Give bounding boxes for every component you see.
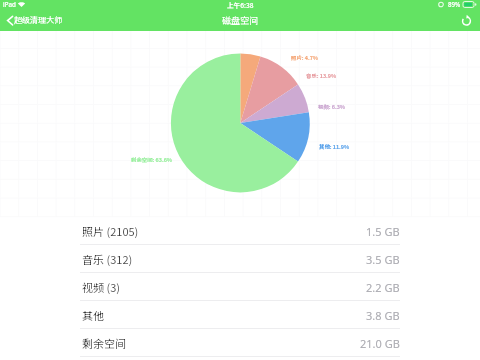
- button[interactable]: 视频 (3): [0, 273, 480, 301]
- staticText: 剩余空间: [82, 335, 126, 351]
- staticText: 音乐: 13.9%: [306, 72, 337, 80]
- staticText: 照片 (2105): [82, 223, 139, 239]
- staticText: 2.2 GB: [366, 280, 400, 295]
- staticText: 3.5 GB: [366, 252, 400, 267]
- button[interactable]: 超级清理大师: [2, 13, 70, 29]
- button[interactable]: 剩余空间: [0, 329, 480, 357]
- staticText: 剩余空间: 63.6%: [131, 156, 173, 164]
- button[interactable]: 其他: [0, 301, 480, 329]
- staticText: 其他: 11.9%: [319, 143, 350, 151]
- staticText: 视频 (3): [82, 279, 121, 295]
- button[interactable]: Refresh: [458, 12, 480, 31]
- staticText: 其他: [82, 307, 104, 323]
- staticText: 21.0 GB: [360, 336, 400, 351]
- staticText: 3.8 GB: [366, 308, 400, 323]
- button[interactable]: 音乐 (312): [0, 245, 480, 273]
- staticText: 音乐 (312): [82, 251, 133, 267]
- staticText: 上午6:38: [227, 0, 254, 10]
- staticText: 视频: 6.3%: [318, 103, 346, 111]
- staticText: iPad: [3, 0, 16, 8]
- button[interactable]: 照片 (2105): [0, 217, 480, 245]
- staticText: 1.5 GB: [366, 224, 400, 239]
- staticText: 超级清理大师: [14, 14, 62, 26]
- staticText: 89%: [448, 0, 461, 8]
- staticText: 照片: 4.7%: [291, 54, 319, 62]
- staticText: 磁盘空间: [222, 14, 259, 27]
